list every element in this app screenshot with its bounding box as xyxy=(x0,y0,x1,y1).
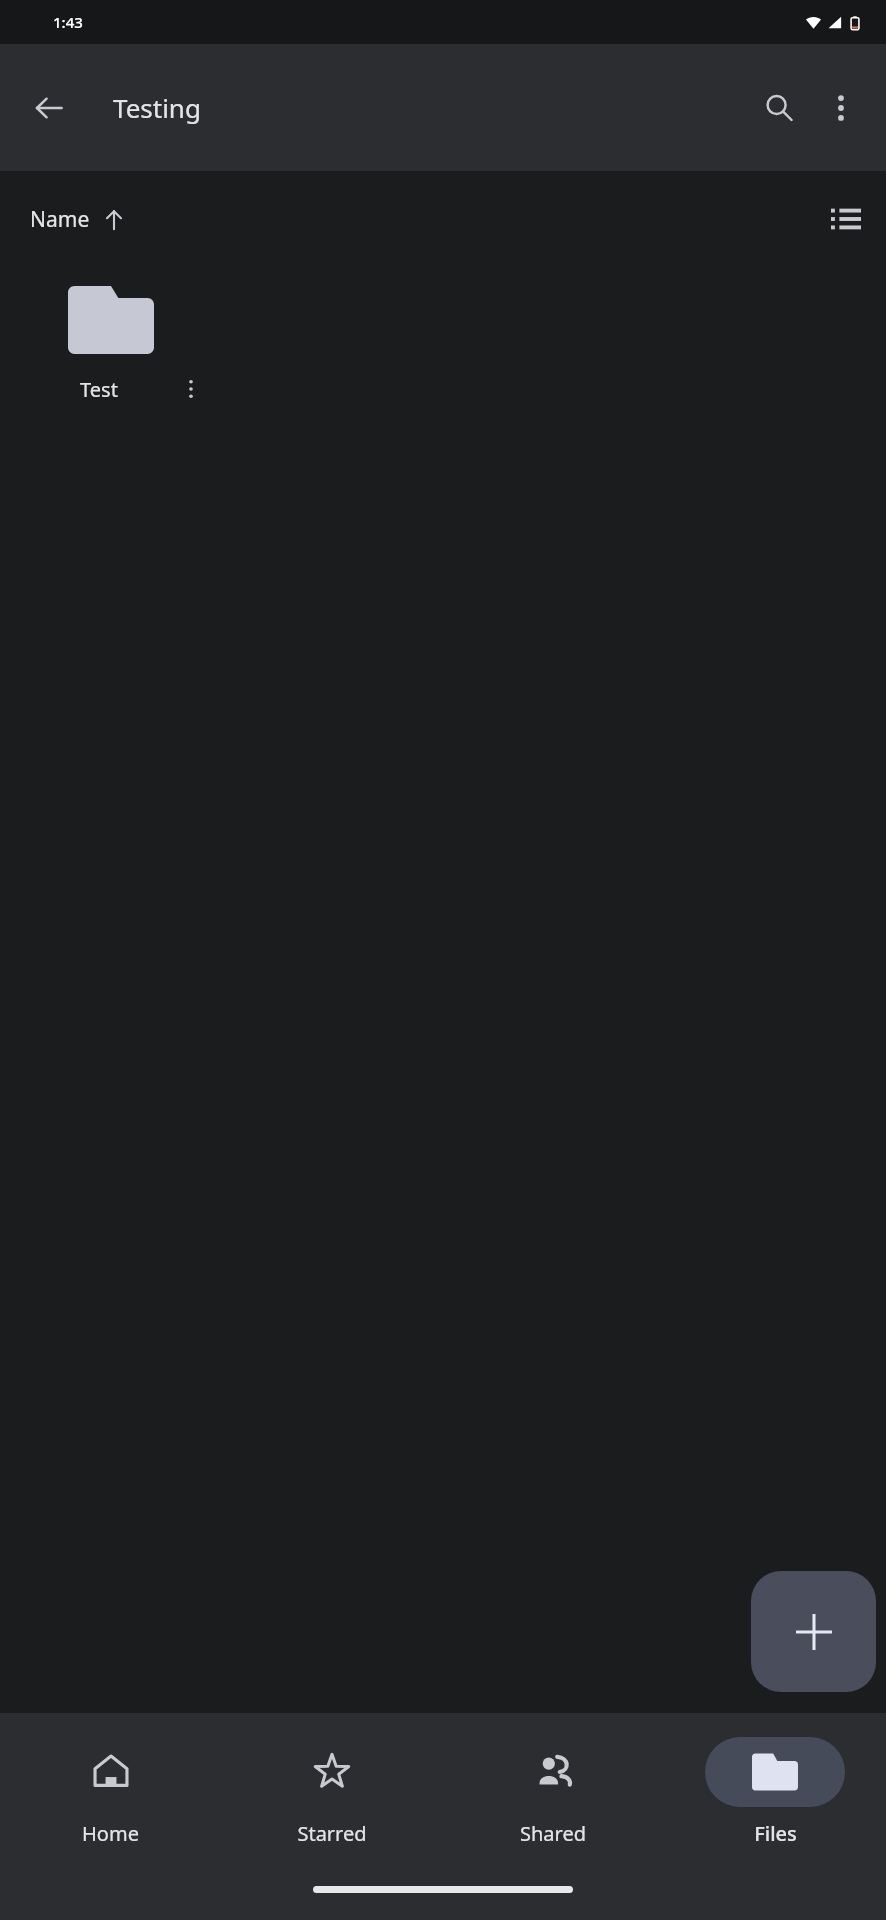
staticText: Files xyxy=(754,1820,797,1847)
button[interactable]: Search xyxy=(748,77,810,139)
staticText: Testing xyxy=(113,90,201,125)
button[interactable]: List view xyxy=(818,191,874,247)
button[interactable]: Test xyxy=(0,286,222,408)
button[interactable]: Item options xyxy=(172,370,210,408)
staticText: Starred xyxy=(297,1820,367,1847)
button[interactable]: Starred xyxy=(221,1713,442,1873)
button[interactable]: Home xyxy=(0,1713,221,1873)
button[interactable]: Name xyxy=(16,199,139,240)
button[interactable]: Shared xyxy=(442,1713,664,1873)
button[interactable]: Create new xyxy=(751,1571,876,1692)
staticText: Shared xyxy=(520,1820,586,1847)
staticText: Test xyxy=(26,376,172,403)
staticText: 1:43 xyxy=(53,12,83,32)
button[interactable]: Back xyxy=(20,79,78,137)
button[interactable]: More options xyxy=(810,77,872,139)
staticText: Name xyxy=(30,205,90,234)
staticText: Home xyxy=(82,1820,139,1847)
button[interactable]: Files xyxy=(664,1713,886,1873)
